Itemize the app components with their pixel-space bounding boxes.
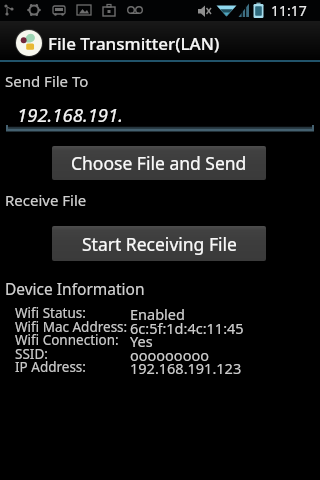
staticText: Choose File and Send <box>71 151 247 175</box>
staticText: 6c:5f:1d:4c:11:45 <box>130 318 244 338</box>
staticText: SSID: <box>15 345 130 363</box>
staticText: Enabled <box>130 304 185 324</box>
staticText: Start Receiving File <box>82 232 237 256</box>
staticText: File Transmitter(LAN) <box>48 32 220 55</box>
staticText: IP Address: <box>15 358 130 376</box>
staticText: 192.168.191.123 <box>130 358 242 378</box>
staticText: Device Information <box>5 278 145 299</box>
button[interactable]: 192.168.191. <box>6 94 314 132</box>
staticText: Send File To <box>5 71 89 91</box>
staticText: ooooooooo <box>130 345 209 365</box>
staticText: Wifi Status: <box>15 304 130 322</box>
staticText: Yes <box>130 331 153 351</box>
staticText: 11:17 <box>271 1 307 20</box>
staticText: Receive File <box>5 190 87 210</box>
staticText: Wifi Mac Address: <box>15 318 130 336</box>
staticText: 192.168.191. <box>17 102 123 127</box>
button[interactable]: Choose File and Send <box>52 146 266 180</box>
button[interactable]: Start Receiving File <box>52 226 266 261</box>
staticText: Wifi Connection: <box>15 331 130 349</box>
